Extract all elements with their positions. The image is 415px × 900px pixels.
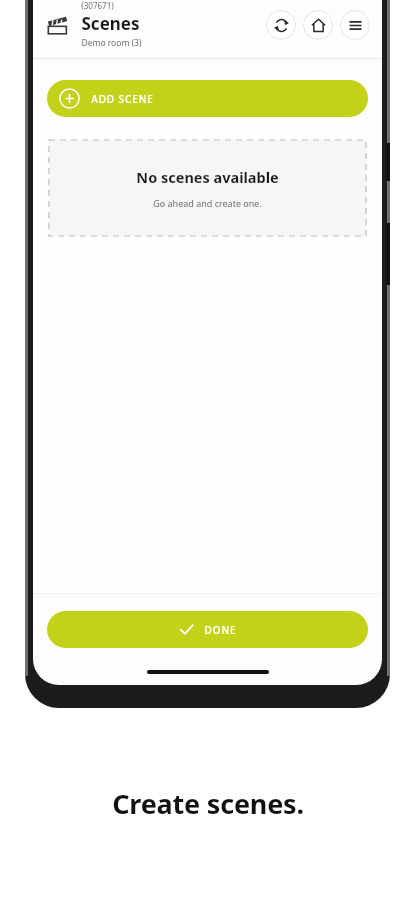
staticText: No scenes available bbox=[136, 167, 279, 187]
staticText: Go ahead and create one. bbox=[153, 197, 262, 209]
staticText: (307671) bbox=[81, 0, 114, 11]
staticText: Demo room (3) bbox=[81, 37, 142, 49]
staticText: ADD SCENE bbox=[91, 92, 154, 106]
staticText: Create scenes. bbox=[112, 785, 304, 822]
button[interactable]: Refresh bbox=[266, 10, 296, 40]
staticText: Scenes bbox=[81, 12, 140, 35]
button[interactable]: ADD SCENE bbox=[47, 80, 368, 117]
button[interactable]: DONE bbox=[47, 611, 368, 648]
staticText: DONE bbox=[204, 623, 237, 637]
button[interactable]: Home bbox=[303, 10, 333, 40]
button[interactable]: Menu bbox=[340, 10, 370, 40]
